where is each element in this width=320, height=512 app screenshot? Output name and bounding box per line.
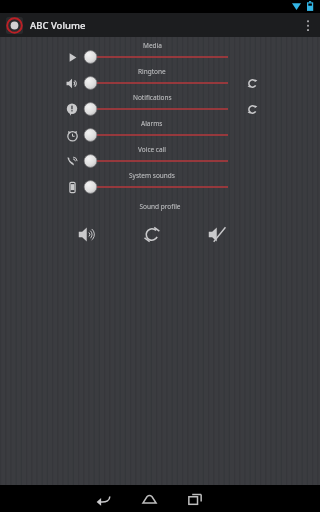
staticText: Ringtone [138, 67, 166, 76]
button[interactable]: More options [296, 13, 320, 37]
button[interactable]: Silent sound profile [202, 219, 232, 249]
button[interactable]: Notifications [0, 92, 320, 118]
button[interactable]: Voice call [0, 144, 320, 170]
button[interactable]: Vibrate sound profile [137, 219, 167, 249]
staticText: System sounds [129, 171, 175, 180]
staticText: Voice call [138, 145, 166, 154]
button[interactable]: Ringtone [0, 66, 320, 92]
button[interactable]: Media [0, 40, 320, 66]
staticText: Notifications [133, 93, 172, 102]
button[interactable]: Normal sound profile [72, 219, 102, 249]
staticText: Sound profile [0, 202, 320, 211]
staticText: ABC Volume [30, 19, 86, 32]
button[interactable]: Back [90, 486, 116, 512]
button[interactable]: Recent apps [182, 486, 208, 512]
staticText: Alarms [141, 119, 163, 128]
button[interactable]: Link Notifications [241, 98, 263, 120]
button[interactable]: System sounds [0, 170, 320, 196]
button[interactable]: Link Ringtone [241, 72, 263, 94]
button[interactable]: Alarms [0, 118, 320, 144]
button[interactable]: Home [136, 486, 162, 512]
staticText: Media [143, 41, 162, 50]
button[interactable]: App icon [6, 17, 23, 34]
